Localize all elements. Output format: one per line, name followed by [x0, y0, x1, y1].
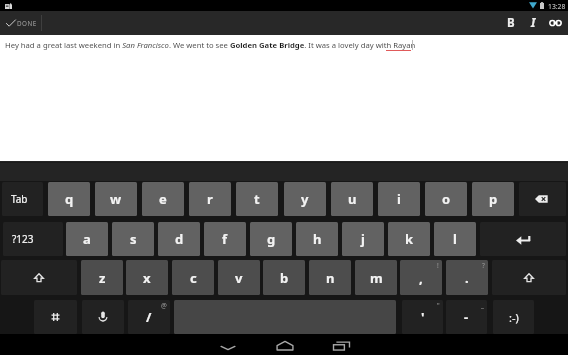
- staticText: 13:28: [548, 2, 566, 11]
- staticText: b: [280, 269, 289, 287]
- staticText: a: [83, 230, 91, 248]
- button[interactable]: h: [296, 222, 338, 256]
- button[interactable]: f: [204, 222, 246, 256]
- staticText: ,: [419, 269, 423, 287]
- button[interactable]: ?123: [3, 222, 63, 256]
- button[interactable]: Tab: [2, 182, 43, 216]
- button[interactable]: Hide keyboard: [199, 334, 256, 355]
- staticText: w: [110, 190, 122, 208]
- staticText: f: [222, 230, 228, 248]
- staticText: o: [442, 190, 451, 208]
- staticText: Hey had a great last weekend in San Fran…: [5, 40, 416, 50]
- staticText: :-): [509, 310, 519, 325]
- staticText: i: [397, 190, 401, 208]
- button[interactable]: B: [500, 11, 522, 35]
- button[interactable]: y: [284, 182, 326, 216]
- staticText: /: [146, 308, 152, 326]
- button[interactable]: e: [142, 182, 184, 216]
- button[interactable]: g: [250, 222, 292, 256]
- staticText: ?123: [12, 232, 34, 246]
- staticText: c: [190, 269, 197, 287]
- button[interactable]: DONE: [0, 11, 41, 35]
- button[interactable]: l: [434, 222, 476, 256]
- button[interactable]: .: [446, 260, 488, 295]
- button[interactable]: Shift: [1, 260, 77, 295]
- staticText: e: [159, 190, 167, 208]
- staticText: t: [254, 190, 260, 208]
- button[interactable]: Insert link: [544, 11, 567, 35]
- button[interactable]: m: [355, 260, 397, 295]
- button[interactable]: /: [128, 300, 170, 334]
- staticText: z: [99, 269, 106, 287]
- button[interactable]: Backspace: [519, 182, 566, 216]
- staticText: .: [465, 269, 469, 287]
- button[interactable]: j: [342, 222, 384, 256]
- staticText: l: [453, 230, 457, 248]
- button[interactable]: ': [402, 300, 443, 334]
- staticText: v: [235, 269, 243, 287]
- button[interactable]: I: [522, 11, 544, 35]
- staticText: m: [370, 269, 383, 287]
- staticText: u: [348, 190, 357, 208]
- button[interactable]: r: [189, 182, 231, 216]
- button[interactable]: x: [126, 260, 168, 295]
- staticText: B: [507, 15, 515, 31]
- staticText: d: [175, 230, 184, 248]
- staticText: h: [313, 230, 322, 248]
- staticText: q: [65, 190, 74, 208]
- button[interactable]: Home: [256, 334, 313, 355]
- button[interactable]: Keyboard settings: [34, 300, 77, 334]
- button[interactable]: b: [263, 260, 305, 295]
- staticText: @: [161, 301, 167, 310]
- staticText: DONE: [17, 19, 37, 28]
- staticText: !: [437, 261, 439, 270]
- button[interactable]: d: [158, 222, 200, 256]
- staticText: Tab: [11, 192, 28, 206]
- button[interactable]: c: [172, 260, 214, 295]
- staticText: -: [464, 308, 469, 326]
- button[interactable]: n: [309, 260, 351, 295]
- button[interactable]: :-): [493, 300, 534, 334]
- staticText: g: [267, 230, 276, 248]
- button[interactable]: s: [112, 222, 154, 256]
- staticText: k: [405, 230, 414, 248]
- staticText: I: [531, 15, 536, 31]
- staticText: ?: [482, 261, 485, 270]
- button[interactable]: Enter: [480, 222, 566, 256]
- button[interactable]: v: [218, 260, 260, 295]
- button[interactable]: z: [81, 260, 123, 295]
- button[interactable]: o: [425, 182, 467, 216]
- button[interactable]: w: [95, 182, 137, 216]
- staticText: n: [326, 269, 335, 287]
- button[interactable]: a: [66, 222, 108, 256]
- button[interactable]: i: [378, 182, 420, 216]
- button[interactable]: q: [48, 182, 90, 216]
- staticText: j: [361, 230, 365, 248]
- button[interactable]: p: [472, 182, 514, 216]
- staticText: y: [301, 190, 309, 208]
- button[interactable]: Shift: [492, 260, 566, 295]
- button[interactable]: -: [446, 300, 487, 334]
- staticText: _: [481, 301, 484, 310]
- staticText: s: [130, 230, 137, 248]
- staticText: r: [207, 190, 213, 208]
- staticText: ': [421, 308, 425, 326]
- button[interactable]: k: [388, 222, 430, 256]
- button[interactable]: ,: [400, 260, 442, 295]
- staticText: ": [437, 301, 440, 310]
- button[interactable]: Voice input: [82, 300, 124, 334]
- staticText: p: [489, 190, 498, 208]
- button[interactable]: u: [331, 182, 373, 216]
- button[interactable]: t: [236, 182, 278, 216]
- staticText: x: [143, 269, 151, 287]
- button[interactable]: Recent apps: [313, 334, 370, 355]
